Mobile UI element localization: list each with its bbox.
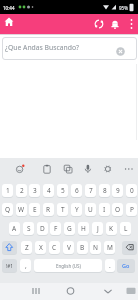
button[interactable]: [94, 19, 104, 29]
button[interactable]: P: [126, 203, 137, 216]
button[interactable]: [64, 284, 77, 298]
staticText: B: [80, 243, 85, 252]
staticText: 5: [61, 186, 65, 195]
staticText: X: [39, 243, 43, 252]
button[interactable]: 2: [16, 184, 27, 197]
staticText: L: [124, 224, 128, 233]
button[interactable]: S: [23, 222, 34, 235]
button[interactable]: 1: [2, 184, 13, 197]
button[interactable]: H: [78, 222, 89, 235]
staticText: 95%: [119, 5, 128, 11]
button[interactable]: 8: [99, 184, 110, 197]
button[interactable]: [126, 287, 136, 295]
staticText: E: [33, 205, 37, 214]
staticText: W: [18, 205, 25, 214]
button[interactable]: K: [106, 222, 117, 235]
staticText: R: [46, 205, 51, 214]
staticText: Y: [75, 205, 79, 214]
button[interactable]: D: [37, 222, 48, 235]
staticText: .: [109, 261, 111, 270]
staticText: Q: [5, 205, 11, 214]
staticText: 0: [130, 186, 134, 195]
button[interactable]: R: [43, 203, 54, 216]
button[interactable]: .: [105, 259, 115, 272]
button[interactable]: [15, 164, 25, 174]
button[interactable]: 9: [112, 184, 123, 197]
button[interactable]: 3: [29, 184, 40, 197]
staticText: G: [67, 224, 72, 233]
button[interactable]: V: [63, 241, 74, 254]
staticText: 10:44: [3, 5, 15, 11]
button[interactable]: [122, 241, 137, 254]
staticText: 7: [89, 186, 93, 195]
button[interactable]: M: [104, 241, 115, 254]
staticText: !#1: [6, 263, 13, 269]
button[interactable]: C: [49, 241, 60, 254]
button[interactable]: E: [29, 203, 40, 216]
button[interactable]: [30, 284, 42, 298]
button[interactable]: [103, 164, 113, 174]
button[interactable]: U: [85, 203, 96, 216]
staticText: T: [61, 205, 65, 214]
button[interactable]: 4: [43, 184, 54, 197]
staticText: P: [130, 205, 134, 214]
button[interactable]: ,: [20, 259, 31, 272]
button[interactable]: B: [77, 241, 88, 254]
button[interactable]: [3, 16, 15, 28]
button[interactable]: English (US): [34, 259, 102, 272]
staticText: I: [103, 205, 106, 214]
button[interactable]: [2, 37, 137, 60]
button[interactable]: [101, 284, 115, 298]
staticText: ¿Que Andas Buscando?: [5, 43, 80, 52]
button[interactable]: 0: [126, 184, 137, 197]
button[interactable]: [2, 241, 17, 254]
button[interactable]: T: [57, 203, 68, 216]
button[interactable]: [124, 164, 134, 174]
staticText: O: [115, 205, 121, 214]
button[interactable]: L: [120, 222, 131, 235]
staticText: U: [88, 205, 93, 214]
button[interactable]: [83, 164, 93, 174]
button[interactable]: F: [50, 222, 61, 235]
staticText: Z: [25, 243, 29, 252]
button[interactable]: A: [9, 222, 20, 235]
staticText: H: [81, 224, 86, 233]
button[interactable]: W: [16, 203, 27, 216]
button[interactable]: G: [64, 222, 75, 235]
button[interactable]: [116, 47, 125, 56]
staticText: D: [40, 224, 45, 233]
staticText: C: [52, 243, 57, 252]
staticText: 4: [47, 186, 51, 195]
staticText: N: [93, 243, 98, 252]
staticText: K: [109, 224, 114, 233]
staticText: Go: [122, 262, 130, 269]
staticText: A: [12, 224, 17, 233]
button[interactable]: Y: [71, 203, 82, 216]
button[interactable]: I: [99, 203, 110, 216]
staticText: 9: [116, 186, 120, 195]
button[interactable]: [42, 164, 52, 174]
staticText: S: [27, 224, 31, 233]
button[interactable]: Q: [2, 203, 13, 216]
staticText: 1: [6, 186, 10, 195]
button[interactable]: 7: [85, 184, 96, 197]
button[interactable]: Z: [21, 241, 32, 254]
staticText: J: [97, 224, 99, 233]
button[interactable]: 5: [57, 184, 68, 197]
staticText: F: [54, 224, 58, 233]
button[interactable]: 6: [71, 184, 82, 197]
button[interactable]: X: [35, 241, 46, 254]
staticText: English (US): [56, 263, 81, 269]
button[interactable]: [127, 18, 136, 30]
staticText: 8: [103, 186, 107, 195]
button[interactable]: !#1: [2, 259, 17, 272]
button[interactable]: J: [92, 222, 103, 235]
button[interactable]: [110, 19, 120, 30]
button[interactable]: N: [90, 241, 101, 254]
staticText: 6: [75, 186, 79, 195]
staticText: ,: [25, 261, 27, 270]
button[interactable]: O: [112, 203, 123, 216]
button[interactable]: [63, 164, 73, 174]
staticText: V: [67, 243, 71, 252]
button[interactable]: Go: [117, 259, 135, 272]
